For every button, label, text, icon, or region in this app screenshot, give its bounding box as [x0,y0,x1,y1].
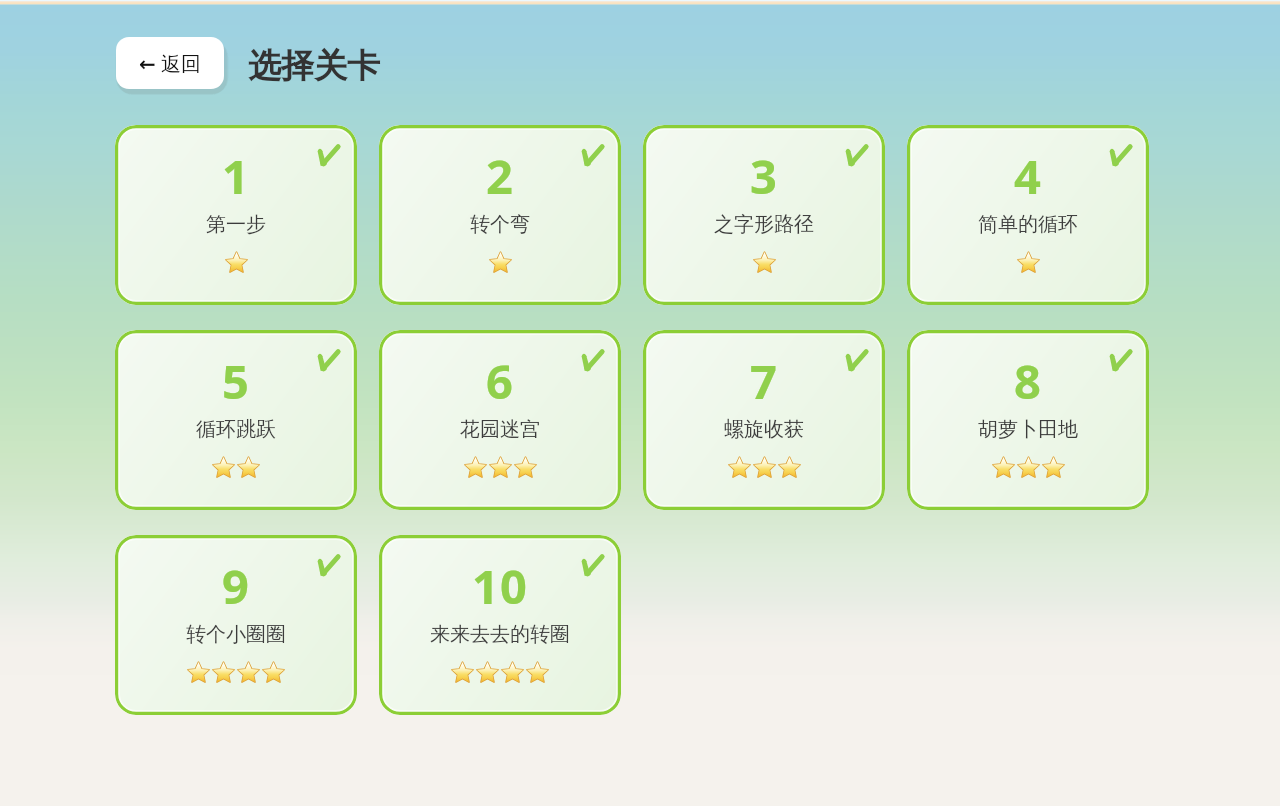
staticText: 循环跳跃 [196,417,276,442]
button[interactable]: ← 返回 [116,37,224,89]
staticText: 2 [486,144,514,208]
other: 已完成 [317,349,340,371]
staticText: 7 [750,349,778,413]
other: 已完成 [1109,144,1132,166]
staticText: 选择关卡 [248,45,380,87]
button[interactable]: 已完成 [379,125,621,305]
staticText: 转个弯 [470,212,530,237]
button[interactable]: 已完成 [907,330,1149,510]
other: 已完成 [317,144,340,166]
staticText: 8 [1014,349,1042,413]
button[interactable]: 已完成 [643,125,885,305]
other: 已完成 [845,349,868,371]
staticText: 9 [222,554,250,618]
staticText: 之字形路径 [714,212,814,237]
staticText: 简单的循环 [978,212,1078,237]
button[interactable]: 已完成 [115,125,357,305]
staticText: 转个小圈圈 [186,622,286,647]
staticText: 第一步 [206,212,266,237]
button[interactable]: 已完成 [115,330,357,510]
staticText: 5 [222,349,250,413]
button[interactable]: 已完成 [379,535,621,715]
other: 已完成 [845,144,868,166]
staticText: 6 [486,349,514,413]
staticText: 1 [222,144,250,208]
staticText: 胡萝卜田地 [978,417,1078,442]
staticText: ← 返回 [139,50,201,77]
button[interactable]: 已完成 [643,330,885,510]
staticText: 花园迷宫 [460,417,540,442]
other: 已完成 [1109,349,1132,371]
staticText: 来来去去的转圈 [430,622,570,647]
other: 已完成 [581,144,604,166]
staticText: 10 [472,554,528,618]
staticText: 4 [1014,144,1042,208]
staticText: 螺旋收获 [724,417,804,442]
button[interactable]: 已完成 [907,125,1149,305]
staticText: 3 [750,144,778,208]
other: 已完成 [581,554,604,576]
button[interactable]: 已完成 [379,330,621,510]
button[interactable]: 已完成 [115,535,357,715]
other: 已完成 [581,349,604,371]
other: 已完成 [317,554,340,576]
